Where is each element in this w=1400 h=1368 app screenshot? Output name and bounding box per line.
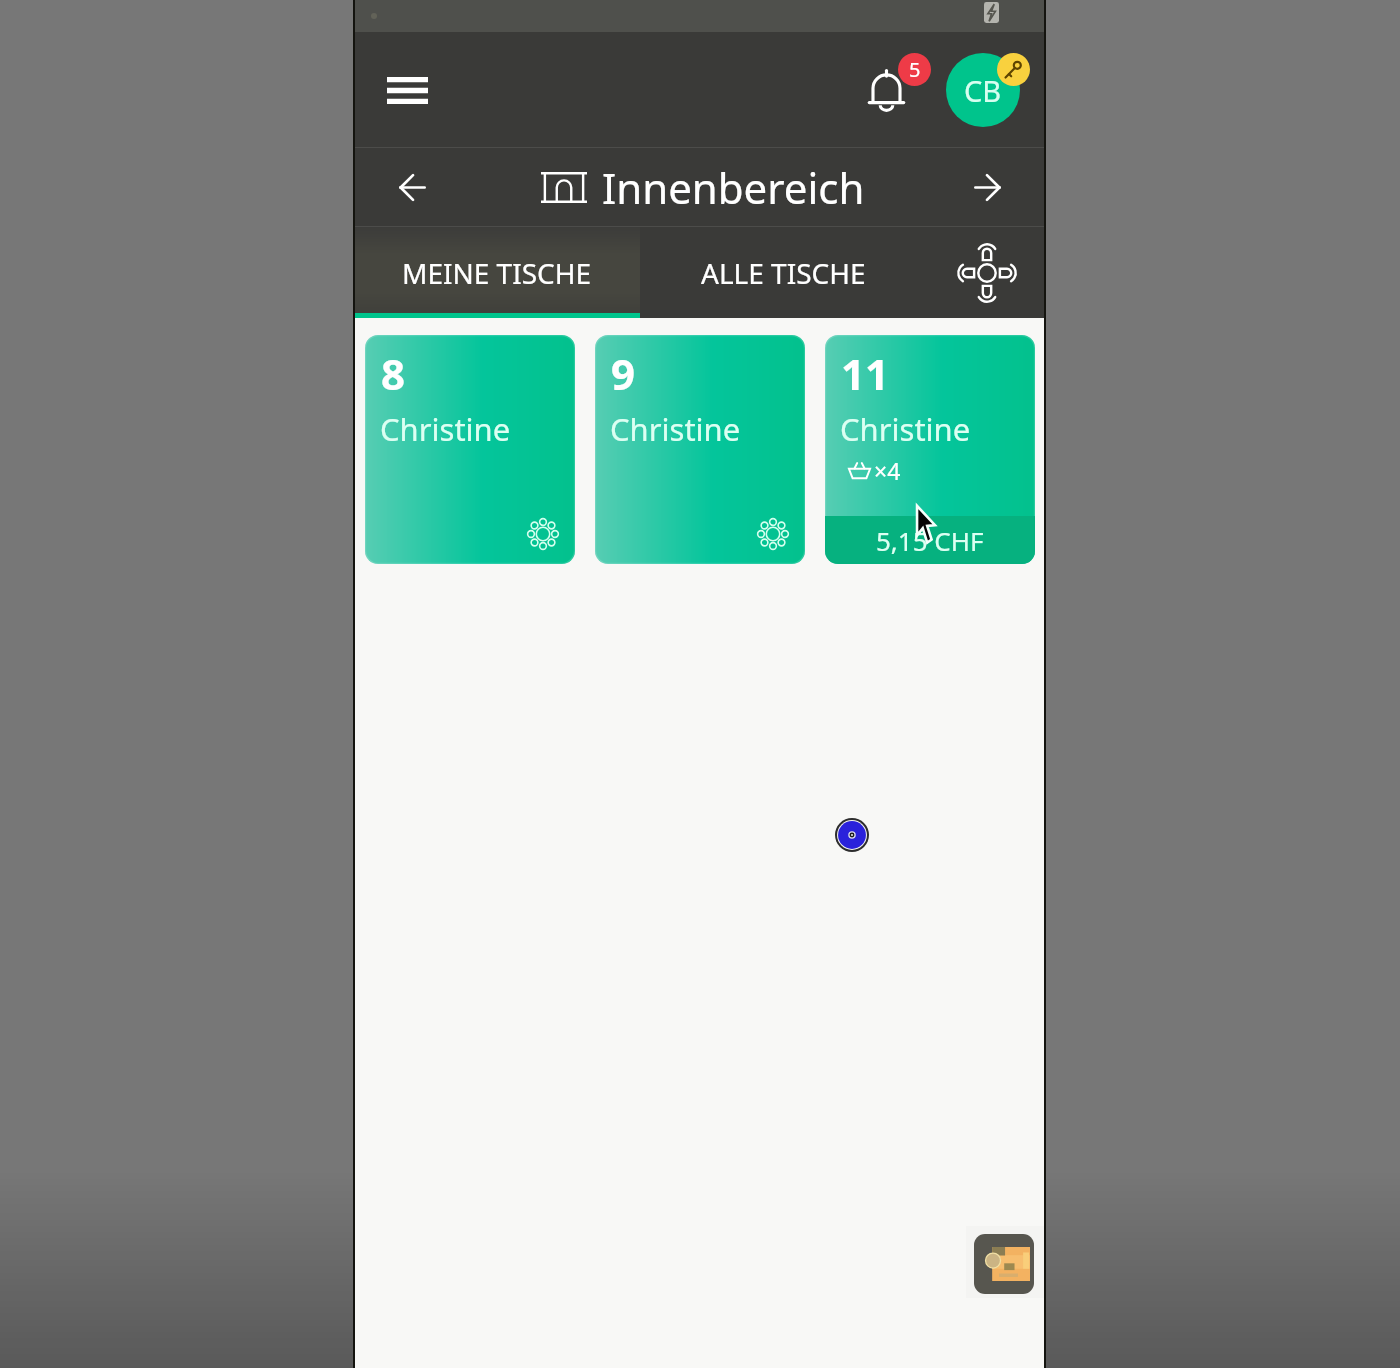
staticText: 8: [381, 345, 406, 402]
staticText: Christine: [610, 408, 741, 450]
button[interactable]: Payment terminal: [974, 1234, 1034, 1294]
staticText: Christine: [380, 408, 511, 450]
button[interactable]: Table layout: [927, 227, 1046, 318]
button[interactable]: Notifications: [864, 68, 908, 112]
staticText: ×4: [874, 455, 901, 486]
button[interactable]: Next area: [953, 153, 1021, 221]
button[interactable]: Previous area: [378, 153, 446, 221]
staticText: 9: [611, 345, 636, 402]
staticText: 5: [909, 56, 921, 83]
staticText: 5,15 CHF: [876, 523, 984, 558]
staticText: 11: [841, 345, 890, 402]
staticText: Christine: [840, 408, 971, 450]
staticText: Innenbereich: [602, 159, 865, 216]
staticText: MEINE TISCHE: [402, 254, 592, 292]
button[interactable]: Menu: [367, 48, 447, 132]
button[interactable]: 11: [825, 335, 1035, 564]
button[interactable]: ALLE TISCHE: [640, 227, 927, 318]
staticText: ALLE TISCHE: [701, 254, 866, 292]
button[interactable]: Profile: [946, 53, 1020, 127]
staticText: CB: [964, 71, 1002, 110]
button[interactable]: MEINE TISCHE: [353, 227, 640, 318]
button[interactable]: 9: [595, 335, 805, 564]
button[interactable]: 8: [365, 335, 575, 564]
